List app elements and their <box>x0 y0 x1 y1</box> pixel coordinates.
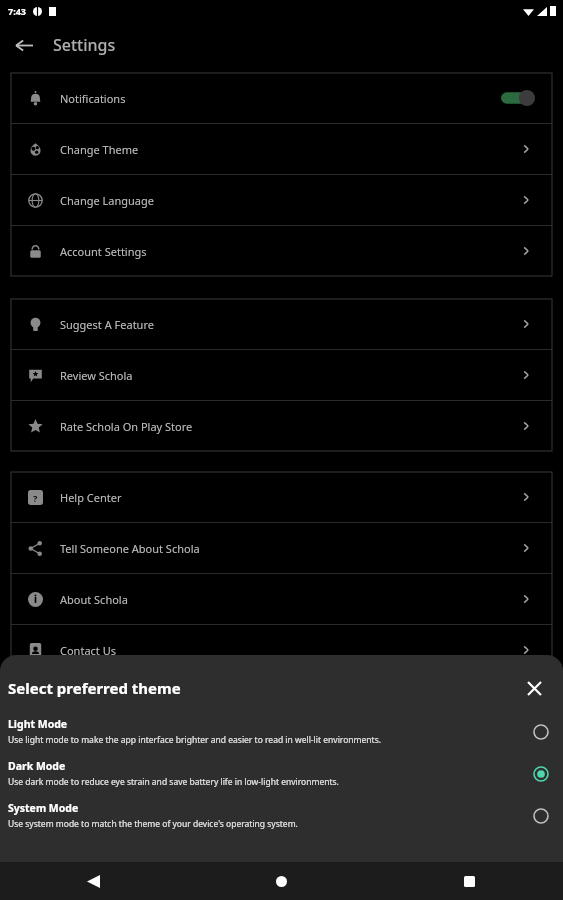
staticText: Change Language <box>60 193 154 208</box>
staticText: Contact Us <box>60 643 116 658</box>
button[interactable]: Change Language <box>11 175 552 225</box>
staticText: Select preferred theme <box>8 678 181 698</box>
staticText: System Mode <box>8 801 79 815</box>
button[interactable]: Home <box>187 862 375 900</box>
staticText: Tell Someone About Schola <box>60 541 200 556</box>
staticText: 7:43 <box>8 5 26 17</box>
button[interactable]: Review Schola <box>11 350 552 400</box>
staticText: About Schola <box>60 592 128 607</box>
button[interactable]: Tell Someone About Schola <box>11 523 552 573</box>
staticText: Change Theme <box>60 142 139 157</box>
staticText: Notifications <box>60 91 126 106</box>
staticText: Settings <box>53 34 116 56</box>
staticText: Suggest A Feature <box>60 317 154 332</box>
button[interactable]: Back <box>0 862 187 900</box>
button[interactable]: Back <box>8 29 40 61</box>
button[interactable]: Light Mode <box>0 717 563 746</box>
button[interactable]: Rate Schola On Play Store <box>11 401 552 451</box>
button[interactable]: Contact Us <box>11 625 552 675</box>
staticText: Light Mode <box>8 717 68 731</box>
button[interactable]: System Mode <box>0 801 563 830</box>
button[interactable]: Dark Mode <box>0 759 563 788</box>
button[interactable]: ? <box>11 472 552 522</box>
staticText: Account Settings <box>60 244 147 259</box>
staticText: Review Schola <box>60 368 133 383</box>
button[interactable]: Close <box>519 673 549 703</box>
button[interactable]: Account Settings <box>11 226 552 276</box>
staticText: Rate Schola On Play Store <box>60 419 193 434</box>
staticText: Help Center <box>60 490 122 505</box>
staticText: Use light mode to make the app interface… <box>8 734 381 746</box>
button[interactable]: Recents <box>375 862 563 900</box>
button[interactable]: Change Theme <box>11 124 552 174</box>
staticText: Use dark mode to reduce eye strain and s… <box>8 776 339 788</box>
staticText: Use system mode to match the theme of yo… <box>8 818 298 830</box>
staticText: ? <box>33 492 38 504</box>
button[interactable] <box>501 89 537 107</box>
button[interactable]: Suggest A Feature <box>11 299 552 349</box>
button[interactable]: Notifications <box>11 73 552 123</box>
staticText: Dark Mode <box>8 759 66 773</box>
button[interactable]: About Schola <box>11 574 552 624</box>
